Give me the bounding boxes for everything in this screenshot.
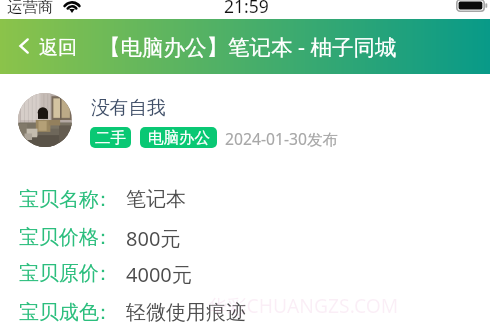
staticText: 运营商 [7, 0, 54, 16]
staticText: 宝贝名称 [19, 187, 99, 212]
staticText: ： [93, 225, 113, 250]
button[interactable]: 二手 [90, 127, 131, 148]
staticText: ： [93, 261, 113, 286]
other: WiFi [62, 1, 82, 13]
staticText: 笔记本 [126, 187, 186, 212]
staticText: ： [93, 187, 113, 212]
button[interactable]: Seller avatar [18, 93, 72, 147]
staticText: 二手 [95, 128, 126, 148]
staticText: 轻微使用痕迹 [126, 300, 246, 325]
staticText: 4000元 [126, 261, 192, 288]
staticText: 华彩CHUANGZS.COM [208, 292, 399, 318]
button[interactable]: 没有自我 [91, 96, 166, 120]
staticText: 2024-01-30发布 [225, 128, 339, 149]
staticText: 【电脑办公】笔记本 - 柚子同城 [99, 32, 397, 61]
staticText: 返回 [39, 36, 77, 60]
other: Battery [456, 0, 488, 12]
staticText: 没有自我 [91, 96, 166, 120]
staticText: 宝贝成色 [19, 300, 99, 325]
staticText: ： [93, 300, 113, 325]
staticText: 电脑办公 [148, 128, 210, 148]
staticText: 宝贝原价 [19, 261, 99, 286]
button[interactable]: 返回 [0, 26, 87, 66]
staticText: 宝贝价格 [19, 225, 99, 250]
staticText: 21:59 [224, 0, 269, 13]
button[interactable]: 电脑办公 [140, 127, 217, 148]
staticText: 800元 [126, 225, 181, 252]
